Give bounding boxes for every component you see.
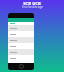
staticText: free brokerage [22, 5, 43, 9]
button[interactable] [8, 49, 34, 55]
button[interactable] [8, 43, 34, 49]
staticText: SCB GCB [23, 1, 41, 7]
button[interactable] [8, 55, 34, 61]
button[interactable]: Home [19, 64, 24, 69]
button[interactable] [8, 22, 34, 25]
button[interactable] [8, 25, 34, 31]
button[interactable] [8, 31, 34, 37]
button[interactable] [8, 37, 34, 43]
